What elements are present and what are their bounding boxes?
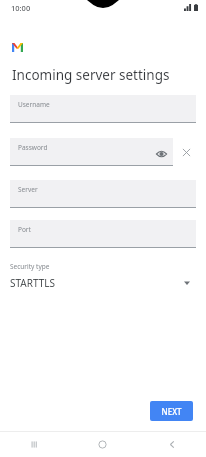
staticText: Password	[18, 143, 48, 152]
button[interactable]: Home	[68, 431, 137, 457]
button[interactable]: Back	[137, 431, 206, 457]
button[interactable]: Username	[10, 95, 196, 123]
staticText: 10:00	[11, 3, 31, 13]
button[interactable]: Security type	[10, 260, 196, 296]
button[interactable]: Password	[10, 138, 173, 166]
button[interactable]: Server	[10, 180, 196, 208]
button[interactable]: Show password	[154, 147, 168, 161]
staticText: Server	[18, 185, 38, 194]
button[interactable]: Port	[10, 220, 196, 248]
staticText: NEXT	[161, 406, 182, 417]
button[interactable]: NEXT	[150, 401, 193, 421]
staticText: Incoming server settings	[12, 66, 170, 84]
staticText: Username	[18, 100, 50, 109]
staticText: Security type	[10, 262, 50, 271]
staticText: Port	[18, 225, 31, 234]
staticText: STARTTLS	[10, 276, 56, 290]
button[interactable]: Recent apps	[0, 431, 68, 457]
button[interactable]: Clear password	[179, 145, 194, 160]
